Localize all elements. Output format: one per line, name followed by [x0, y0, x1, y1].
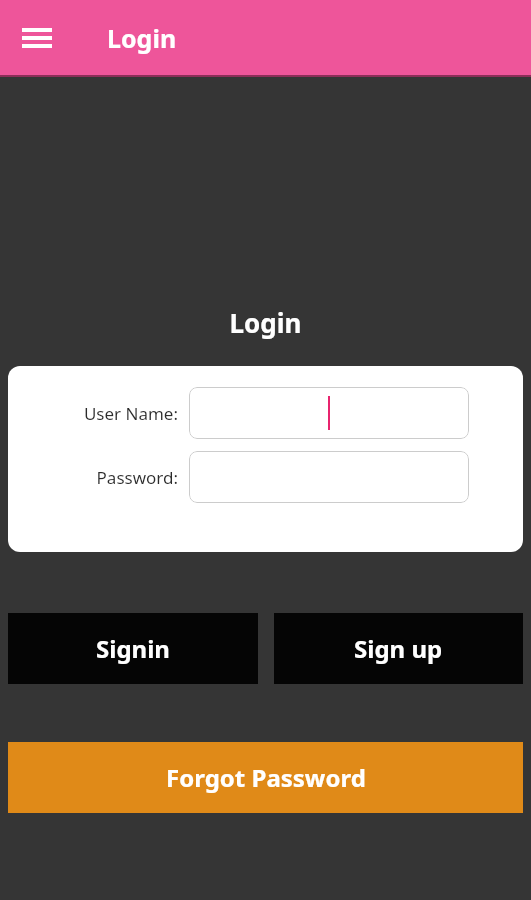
- staticText: Login: [107, 21, 177, 55]
- button[interactable]: Sign up: [274, 613, 523, 684]
- button[interactable]: User name input field: [189, 387, 469, 439]
- button[interactable]: Password input field: [189, 451, 469, 503]
- button[interactable]: Open navigation menu: [10, 11, 64, 65]
- staticText: Forgot Password: [166, 761, 366, 794]
- staticText: Password:: [8, 466, 178, 489]
- button[interactable]: Signin: [8, 613, 258, 684]
- staticText: Login: [0, 305, 531, 340]
- staticText: User Name:: [8, 402, 178, 425]
- staticText: Signin: [96, 632, 170, 665]
- staticText: Sign up: [354, 632, 443, 665]
- button[interactable]: Forgot Password: [8, 742, 523, 813]
